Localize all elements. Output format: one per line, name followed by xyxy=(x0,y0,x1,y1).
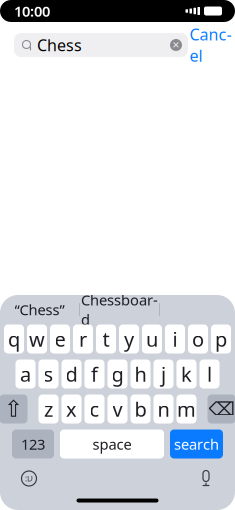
button[interactable]: i xyxy=(165,324,185,353)
button[interactable]: b xyxy=(130,394,150,423)
button[interactable]: 123 xyxy=(12,429,54,458)
staticText: k xyxy=(181,361,192,387)
staticText: z xyxy=(44,396,53,422)
staticText: j xyxy=(161,361,166,387)
staticText: f xyxy=(91,361,98,387)
staticText: n xyxy=(157,396,169,422)
button[interactable]: m xyxy=(176,394,196,423)
button[interactable]: n xyxy=(153,394,173,423)
button[interactable]: k xyxy=(176,359,196,388)
staticText: Chess xyxy=(37,34,82,56)
staticText: ⌫ xyxy=(208,398,234,420)
staticText: a xyxy=(20,361,31,387)
staticText: e xyxy=(54,326,65,352)
staticText: o xyxy=(192,326,204,352)
button[interactable]: y xyxy=(119,324,139,353)
staticText: t xyxy=(102,326,109,352)
button[interactable]: f xyxy=(84,359,104,388)
button[interactable]: o xyxy=(188,324,208,353)
staticText: y xyxy=(124,326,134,352)
button[interactable]: search xyxy=(170,429,223,458)
button[interactable]: e xyxy=(50,324,70,353)
button[interactable]: c xyxy=(84,394,104,423)
staticText: i xyxy=(172,326,177,352)
button[interactable]: Clear text xyxy=(168,37,184,53)
staticText: “Chess” xyxy=(14,300,64,319)
button[interactable]: Cancel xyxy=(188,33,233,57)
button[interactable]: p xyxy=(211,324,231,353)
button[interactable]: u xyxy=(142,324,162,353)
staticText: 123 xyxy=(21,434,45,454)
button[interactable]: j xyxy=(153,359,173,388)
staticText: 10:00 xyxy=(14,1,50,21)
staticText: p xyxy=(215,326,227,352)
staticText: ⇧ xyxy=(4,396,23,422)
staticText: Chessboard xyxy=(81,290,158,329)
button[interactable]: d xyxy=(61,359,81,388)
staticText: l xyxy=(207,361,212,387)
staticText: u xyxy=(146,326,158,352)
staticText: x xyxy=(66,396,77,422)
staticText: :D xyxy=(25,473,33,484)
staticText: ✕ xyxy=(172,40,180,50)
button[interactable]: x xyxy=(61,394,81,423)
button[interactable]: Emoji keyboard xyxy=(17,466,41,490)
staticText: v xyxy=(112,396,122,422)
button[interactable]: Shift xyxy=(0,394,27,423)
button[interactable]: w xyxy=(27,324,47,353)
staticText: Cancel xyxy=(189,24,231,66)
staticText: s xyxy=(43,361,53,387)
staticText: c xyxy=(89,396,99,422)
staticText: q xyxy=(8,326,20,352)
button[interactable]: s xyxy=(38,359,58,388)
staticText: g xyxy=(111,361,123,387)
button[interactable]: g xyxy=(107,359,127,388)
staticText: m xyxy=(177,396,196,422)
staticText: space xyxy=(92,434,131,454)
button[interactable]: a xyxy=(15,359,35,388)
button[interactable]: space xyxy=(60,429,164,458)
button[interactable]: t xyxy=(96,324,116,353)
staticText: b xyxy=(134,396,146,422)
button[interactable]: Chessboard xyxy=(80,295,159,323)
button[interactable]: l xyxy=(199,359,219,388)
staticText: search xyxy=(174,434,219,454)
button[interactable]: r xyxy=(73,324,93,353)
button[interactable]: Delete xyxy=(207,394,235,423)
button[interactable]: “Chess” xyxy=(0,295,79,323)
staticText: d xyxy=(65,361,77,387)
button[interactable]: v xyxy=(107,394,127,423)
button[interactable]: z xyxy=(38,394,58,423)
button[interactable]: Dictate xyxy=(194,466,218,490)
button[interactable]: h xyxy=(130,359,150,388)
staticText: r xyxy=(79,326,87,352)
staticText: w xyxy=(29,326,45,352)
button[interactable]: q xyxy=(4,324,24,353)
staticText: h xyxy=(134,361,146,387)
